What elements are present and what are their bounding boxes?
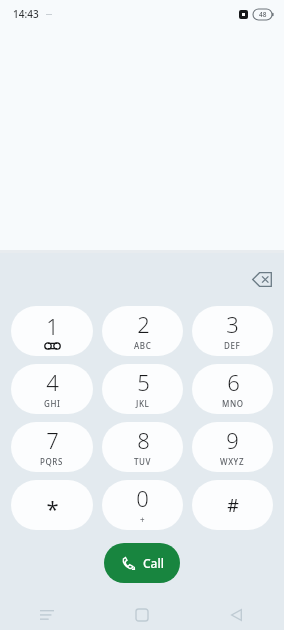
button[interactable]: Home: [94, 600, 189, 630]
button[interactable]: 8: [102, 422, 183, 472]
staticText: 9: [226, 425, 239, 455]
staticText: ABC: [134, 340, 152, 351]
staticText: *: [46, 493, 59, 523]
staticText: 3: [226, 309, 239, 339]
button[interactable]: Back: [189, 600, 284, 630]
button[interactable]: 9: [192, 422, 273, 472]
button[interactable]: 1: [11, 306, 93, 356]
staticText: JKL: [136, 398, 150, 409]
button[interactable]: 6: [192, 364, 273, 414]
staticText: +: [140, 514, 145, 525]
staticText: 48: [259, 10, 267, 19]
button[interactable]: 3: [192, 306, 273, 356]
staticText: #: [227, 493, 239, 518]
button[interactable]: 4: [11, 364, 93, 414]
staticText: 7: [46, 425, 59, 455]
staticText: 8: [137, 425, 150, 455]
button[interactable]: 7: [11, 422, 93, 472]
staticText: 1: [46, 311, 59, 341]
button[interactable]: 0: [102, 480, 183, 530]
button[interactable]: #: [192, 480, 273, 530]
button[interactable]: *: [11, 480, 93, 530]
staticText: 0: [136, 483, 149, 513]
button[interactable]: Backspace: [244, 261, 280, 297]
staticText: 5: [137, 367, 150, 397]
staticText: TUV: [134, 456, 152, 467]
staticText: WXYZ: [220, 456, 245, 467]
button[interactable]: Call: [104, 543, 180, 583]
staticText: 2: [137, 309, 150, 339]
staticText: 6: [227, 367, 240, 397]
button[interactable]: 2: [102, 306, 183, 356]
staticText: PQRS: [40, 456, 64, 467]
staticText: 4: [46, 367, 59, 397]
staticText: Call: [143, 555, 164, 571]
staticText: GHI: [44, 398, 61, 409]
staticText: 14:43: [13, 7, 39, 21]
button[interactable]: Recents: [0, 600, 94, 630]
staticText: MNO: [222, 398, 244, 409]
button[interactable]: 5: [102, 364, 183, 414]
staticText: DEF: [224, 340, 241, 351]
